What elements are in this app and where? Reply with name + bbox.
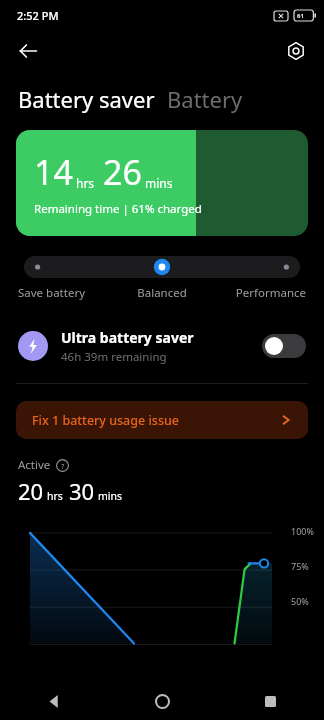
staticText: Active [18,457,51,473]
staticText: Battery saver [18,84,155,114]
staticText: Save battery [18,285,114,301]
staticText: 61 [297,12,304,20]
staticText: mins [98,489,123,503]
button[interactable]: Back [0,682,108,720]
button[interactable]: Save battery [18,285,114,301]
button[interactable]: 14 [16,130,308,236]
staticText: Performance [210,285,306,301]
staticText: Remaining time | 61% charged [34,201,202,217]
staticText: 26 [103,149,142,195]
staticText: 2:52 PM [17,8,59,23]
staticText: 50% [291,595,309,607]
staticText: hrs [47,489,63,503]
button[interactable]: Ultra battery saver toggle [262,334,306,358]
staticText: 100% [291,525,314,537]
staticText: hrs [76,175,95,191]
button[interactable]: Back [8,31,48,71]
staticText: 14 [34,149,73,195]
button[interactable]: Home [108,682,216,720]
button[interactable]: Settings [276,31,316,71]
button[interactable]: Battery saver [18,84,155,114]
staticText: 20 [18,476,44,506]
staticText: Ultra battery saver [61,328,194,347]
button[interactable]: Fix 1 battery usage issue [16,401,308,439]
button[interactable]: Ultra battery saver [0,323,324,369]
staticText: Fix 1 battery usage issue [32,412,280,429]
staticText: mins [145,175,173,191]
staticText: ? [61,461,65,471]
button[interactable]: Recent apps [216,682,324,720]
staticText: Balanced [114,285,210,301]
button[interactable]: Battery [167,84,243,114]
staticText: Battery [167,84,243,114]
button[interactable]: About active time [56,459,69,472]
staticText: 75% [291,560,309,572]
button[interactable]: Balanced [114,285,210,301]
staticText: 46h 39m remaining [61,349,167,365]
button[interactable]: Performance [210,285,306,301]
button[interactable] [24,256,300,278]
staticText: 30 [69,476,95,506]
